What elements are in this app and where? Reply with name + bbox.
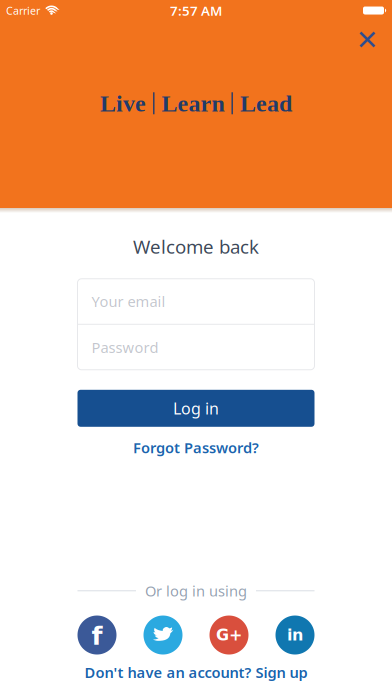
staticText: Welcome back	[133, 234, 259, 259]
staticText: Forgot Password?	[133, 438, 259, 457]
button[interactable]: Don't have an account? Sign up	[84, 662, 307, 682]
button[interactable]: Log in with Google	[209, 615, 248, 654]
button[interactable]: Log in with Twitter	[143, 615, 182, 654]
staticText: Log in	[173, 398, 219, 419]
staticText: Or log in using	[145, 581, 247, 600]
staticText: 7:57 AM	[170, 2, 222, 19]
button[interactable]: Close	[360, 21, 392, 47]
button[interactable]: Forgot Password?	[133, 438, 259, 457]
staticText: Lead	[240, 90, 292, 117]
staticText: Carrier	[6, 3, 40, 18]
staticText: in	[287, 626, 303, 644]
staticText: Live	[100, 90, 146, 117]
staticText: G+	[216, 626, 242, 644]
staticText: Learn	[161, 90, 224, 117]
button[interactable]: Log in with Facebook	[77, 615, 116, 654]
staticText: f	[91, 621, 102, 651]
staticText: Your email	[91, 292, 165, 311]
staticText: Password	[91, 338, 158, 357]
staticText: Don't have an account? Sign up	[84, 662, 307, 682]
button[interactable]: Log in with LinkedIn	[275, 615, 314, 654]
button[interactable]: Log in	[77, 390, 314, 427]
